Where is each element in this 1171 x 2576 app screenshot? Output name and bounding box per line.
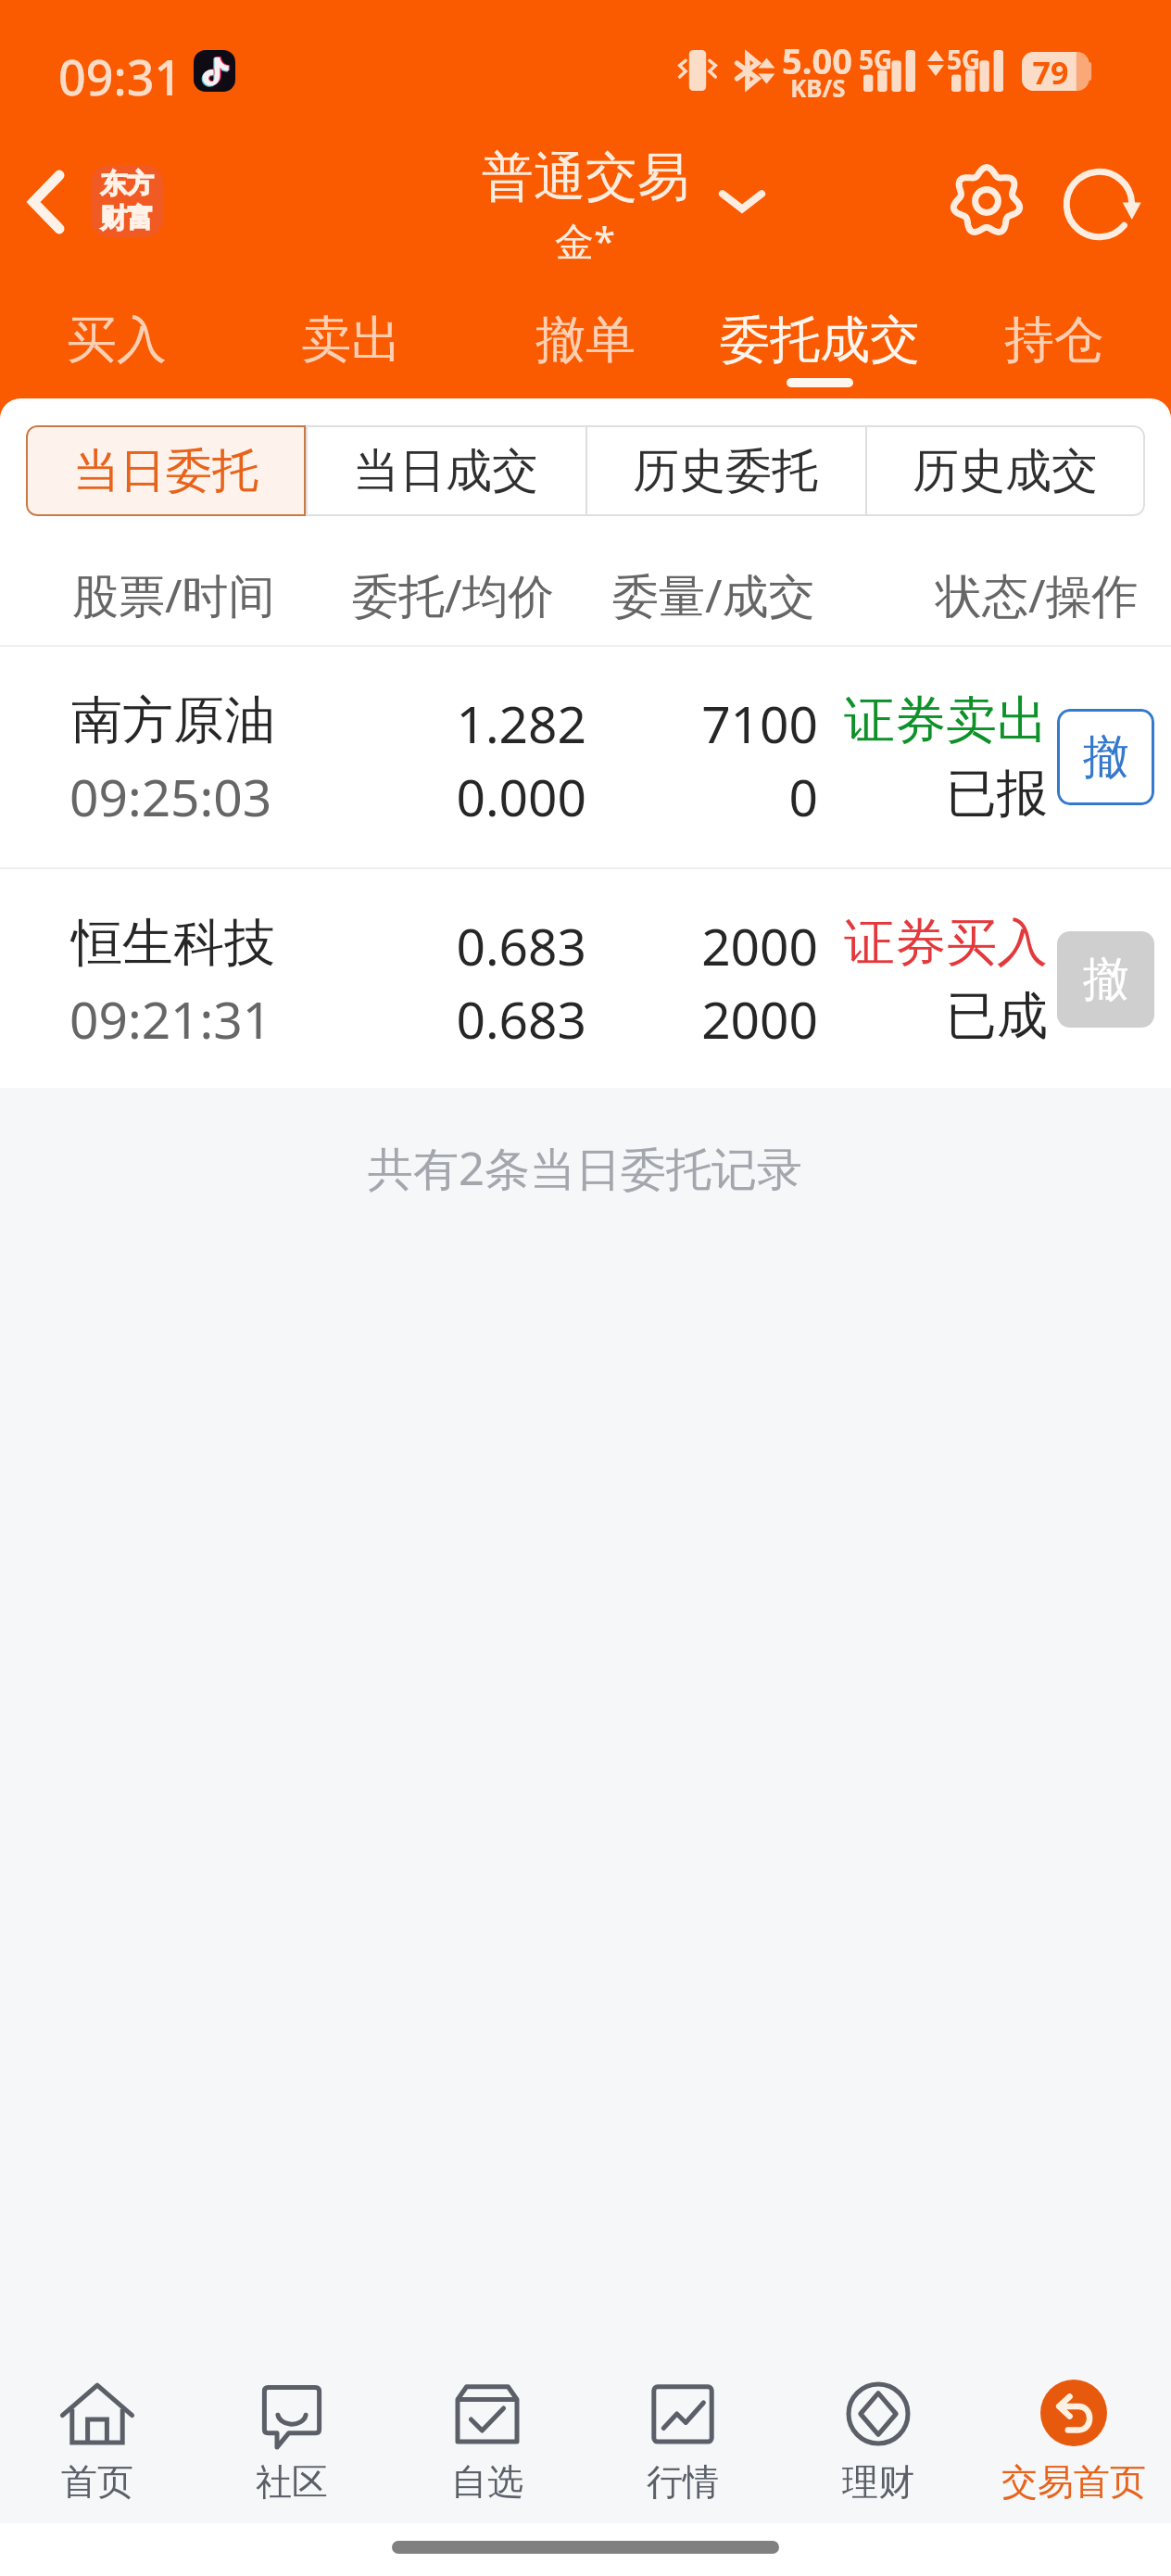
button[interactable]: 当日成交 xyxy=(306,425,585,516)
staticText: 5.00 xyxy=(782,36,852,84)
staticText: 撤 xyxy=(1083,951,1129,1009)
staticText: 当日成交 xyxy=(353,442,538,500)
staticText: 当日委托 xyxy=(73,442,258,500)
staticText: 自选 xyxy=(451,2459,523,2505)
button[interactable]: 撤单 xyxy=(468,309,702,410)
staticText: 委量/成交 xyxy=(612,563,815,626)
button[interactable]: 买入 xyxy=(0,309,233,410)
staticText: 2000 xyxy=(592,984,818,1054)
staticText: 79 xyxy=(1022,51,1079,90)
staticText: 普通交易 xyxy=(482,145,689,210)
staticText: 卖出 xyxy=(301,309,401,372)
staticText: 证券买入 xyxy=(826,911,1048,975)
button[interactable]: Back xyxy=(0,139,93,265)
staticText: 已报 xyxy=(826,762,1048,826)
staticText: 恒生科技 xyxy=(71,911,275,975)
staticText: 1.282 xyxy=(305,688,586,758)
staticText: 持仓 xyxy=(1004,309,1104,372)
staticText: 东方 xyxy=(100,167,154,201)
button[interactable]: 南方原油 xyxy=(0,647,1171,867)
button[interactable]: Refresh xyxy=(1047,152,1151,256)
button[interactable]: 东方财富 xyxy=(91,165,163,237)
button[interactable]: 历史委托 xyxy=(585,425,865,516)
staticText: KB/S xyxy=(790,71,846,104)
staticText: 0 xyxy=(592,762,818,831)
staticText: 7100 xyxy=(592,688,818,758)
staticText: 撤 xyxy=(1083,728,1129,787)
button[interactable]: 委托成交 xyxy=(702,309,937,410)
button[interactable]: 普通交易 xyxy=(0,139,1171,265)
button[interactable]: 卖出 xyxy=(233,309,468,410)
staticText: 09:21:31 xyxy=(69,984,272,1054)
staticText: 5G xyxy=(859,42,893,77)
button[interactable]: 撤 xyxy=(1057,709,1154,805)
staticText: 股票/时间 xyxy=(72,563,275,626)
button[interactable]: 历史成交 xyxy=(865,425,1145,516)
staticText: 0.000 xyxy=(305,762,586,831)
staticText: 南方原油 xyxy=(71,688,275,752)
button[interactable]: 自选 xyxy=(389,2317,585,2523)
staticText: 2000 xyxy=(592,911,818,980)
button[interactable]: 理财 xyxy=(780,2317,976,2523)
staticText: 买入 xyxy=(67,309,167,372)
staticText: 09:31 xyxy=(58,44,183,109)
staticText: 首页 xyxy=(61,2459,133,2505)
staticText: 财富 xyxy=(100,201,154,235)
staticText: 社区 xyxy=(256,2459,328,2505)
staticText: 金* xyxy=(555,214,616,267)
staticText: 历史委托 xyxy=(633,442,818,500)
staticText: 委托成交 xyxy=(720,309,920,372)
staticText: 09:25:03 xyxy=(69,762,272,831)
button[interactable]: 首页 xyxy=(0,2317,195,2523)
button[interactable]: 恒生科技 xyxy=(0,869,1171,1088)
staticText: 证券卖出 xyxy=(826,688,1048,752)
staticText: 已成 xyxy=(826,984,1048,1048)
staticText: 0.683 xyxy=(305,984,586,1054)
button[interactable]: 持仓 xyxy=(937,309,1171,410)
button[interactable]: 行情 xyxy=(585,2317,780,2523)
staticText: 行情 xyxy=(647,2459,719,2505)
button[interactable]: 社区 xyxy=(195,2317,389,2523)
button[interactable]: 交易首页 xyxy=(976,2317,1171,2523)
button[interactable]: 撤 xyxy=(1057,931,1154,1028)
staticText: 历史成交 xyxy=(913,442,1098,500)
staticText: 交易首页 xyxy=(1001,2459,1146,2505)
staticText: 共有2条当日委托记录 xyxy=(368,1137,803,1199)
button[interactable]: 当日委托 xyxy=(26,425,306,516)
staticText: 委托/均价 xyxy=(352,563,555,626)
staticText: 状态/操作 xyxy=(936,563,1139,626)
staticText: 5G xyxy=(947,42,981,77)
staticText: 理财 xyxy=(842,2459,914,2505)
staticText: 撤单 xyxy=(535,309,636,372)
staticText: 0.683 xyxy=(305,911,586,980)
button[interactable]: Settings xyxy=(935,149,1039,253)
